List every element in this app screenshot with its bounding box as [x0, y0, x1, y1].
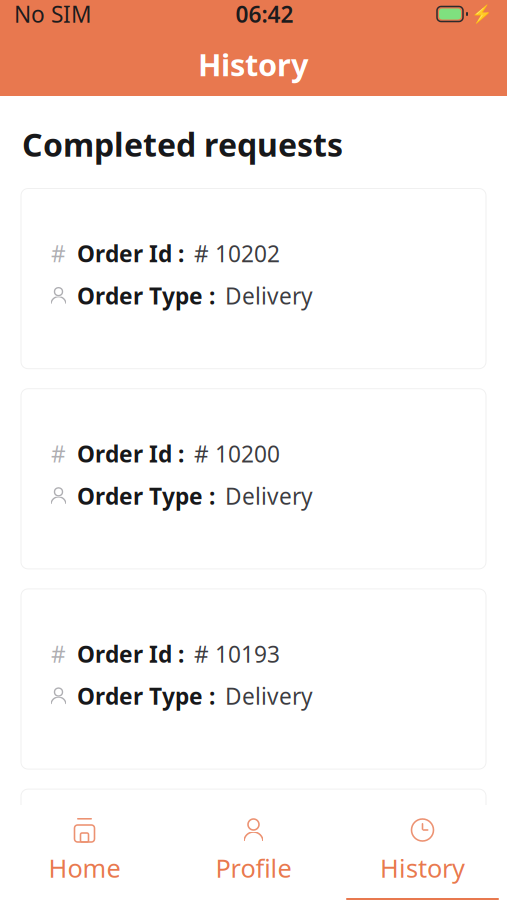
- staticText: Order Type :: [77, 681, 215, 711]
- staticText: Order Type :: [77, 281, 215, 311]
- staticText: # 10200: [194, 439, 280, 469]
- staticText: Profile: [215, 851, 291, 885]
- staticText: Completed requests: [22, 123, 343, 165]
- staticText: Delivery: [225, 281, 313, 311]
- staticText: History: [380, 851, 465, 885]
- staticText: #: [51, 839, 66, 869]
- staticText: #: [51, 439, 66, 469]
- staticText: No SIM: [14, 0, 92, 29]
- staticText: # 10188: [194, 839, 280, 869]
- staticText: Delivery: [225, 681, 313, 711]
- button[interactable]: Profile: [169, 805, 338, 900]
- button[interactable]: History: [338, 805, 507, 900]
- staticText: Order Id :: [77, 639, 184, 669]
- staticText: Order Type :: [77, 481, 215, 511]
- staticText: Order Id :: [77, 439, 184, 469]
- staticText: #: [51, 639, 66, 669]
- button[interactable]: #: [21, 789, 486, 900]
- button[interactable]: #: [21, 188, 486, 369]
- staticText: Order Id :: [77, 238, 184, 269]
- button[interactable]: Home: [0, 805, 169, 900]
- staticText: History: [198, 44, 309, 85]
- button[interactable]: #: [21, 389, 486, 569]
- staticText: # 10202: [194, 238, 280, 269]
- staticText: ⚡: [471, 4, 493, 24]
- staticText: 06:42: [235, 0, 293, 29]
- staticText: Home: [48, 851, 120, 885]
- staticText: Delivery: [225, 481, 313, 511]
- staticText: Order Id :: [77, 839, 184, 869]
- button[interactable]: #: [21, 589, 486, 769]
- staticText: # 10193: [194, 639, 280, 669]
- staticText: #: [51, 238, 66, 269]
